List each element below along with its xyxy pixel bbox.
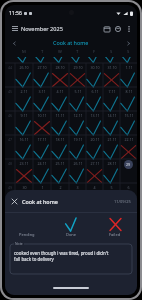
button[interactable]: 7.11 — [103, 87, 120, 111]
button[interactable]: Done — [49, 213, 93, 242]
button[interactable]: 31.10 — [103, 63, 120, 87]
staticText: 49 — [8, 185, 13, 190]
button[interactable]: 4 — [86, 183, 103, 207]
button[interactable]: 30.10 — [86, 63, 103, 87]
staticText: 2 — [59, 185, 62, 190]
button[interactable]: 22.11 — [120, 135, 137, 159]
staticText: 46 — [8, 113, 13, 118]
staticText: 6 — [127, 185, 130, 190]
staticText: 28.10 — [55, 65, 65, 70]
button[interactable]: 14.11 — [103, 111, 120, 135]
button[interactable]: 1.11 — [120, 63, 137, 87]
staticText: 27.11 — [90, 161, 100, 166]
staticText: 12.11 — [73, 113, 83, 118]
button[interactable]: 23.11 — [15, 159, 33, 183]
staticText: 14.11 — [107, 113, 117, 118]
button[interactable]: 17.11 — [33, 135, 51, 159]
staticText: 25.11 — [55, 161, 65, 166]
button[interactable]: Pending — [5, 213, 49, 242]
staticText: 23.11 — [19, 161, 29, 166]
button[interactable]: 25.11 — [51, 159, 69, 183]
staticText: 5 — [110, 185, 113, 190]
staticText: 29.10 — [73, 65, 83, 70]
staticText: 24.11 — [37, 161, 47, 166]
button[interactable]: 28.11 — [103, 159, 120, 183]
staticText: 30.10 — [90, 65, 100, 70]
staticText: 22.11 — [124, 137, 134, 142]
button[interactable]: 28.10 — [51, 63, 69, 87]
button[interactable]: 10.11 — [33, 111, 51, 135]
button[interactable]: 12.11 — [69, 111, 86, 135]
button[interactable]: 24.11 — [33, 159, 51, 183]
staticText: Pending — [19, 232, 35, 237]
staticText: 11:56 — [9, 10, 22, 17]
staticText: Cook at home — [53, 39, 89, 46]
staticText: Failed — [109, 232, 121, 237]
button[interactable]: Menu — [9, 23, 20, 34]
button[interactable]: 6.11 — [86, 87, 103, 111]
staticText: 4.11 — [56, 89, 64, 94]
staticText: 11.11 — [55, 113, 65, 118]
button[interactable]: More options — [123, 23, 134, 34]
staticText: S — [110, 49, 113, 55]
staticText: 48 — [8, 161, 13, 166]
button[interactable]: 30 — [15, 183, 33, 207]
button[interactable]: 8.11 — [120, 87, 137, 111]
button[interactable]: 4.11 — [51, 87, 69, 111]
button[interactable]: 5.11 — [69, 87, 86, 111]
button[interactable]: 18.11 — [51, 135, 69, 159]
button[interactable]: Close — [9, 196, 20, 207]
staticText: W — [58, 49, 62, 55]
staticText: 18.11 — [55, 137, 65, 142]
staticText: 47 — [8, 137, 13, 142]
staticText: Done — [66, 232, 77, 237]
button[interactable]: 21.11 — [103, 135, 120, 159]
button[interactable]: 27.11 — [86, 159, 103, 183]
staticText: 30 — [22, 185, 27, 190]
staticText: M — [22, 49, 26, 55]
button[interactable]: 2 — [51, 183, 69, 207]
button[interactable]: Previous habit — [9, 38, 19, 48]
button[interactable]: 19.11 — [69, 135, 86, 159]
button[interactable]: Statistics — [112, 23, 123, 34]
staticText: 3 — [76, 185, 79, 190]
button[interactable]: Next habit — [123, 38, 133, 48]
staticText: T — [76, 49, 79, 55]
staticText: 9.11 — [20, 113, 28, 118]
button[interactable]: 26.10 — [15, 63, 33, 87]
button[interactable]: 13.11 — [86, 111, 103, 135]
button[interactable]: 3 — [69, 183, 86, 207]
button[interactable]: 9.11 — [15, 111, 33, 135]
button[interactable]: 2.11 — [15, 87, 33, 111]
staticText: T — [41, 49, 44, 55]
button[interactable]: 26.11 — [69, 159, 86, 183]
button[interactable]: 3.11 — [33, 87, 51, 111]
button[interactable]: 1 — [33, 183, 51, 207]
button[interactable]: 11.11 — [51, 111, 69, 135]
staticText: 8.11 — [125, 89, 133, 94]
button[interactable]: 27.10 — [33, 63, 51, 87]
staticText: 19.11 — [73, 137, 83, 142]
staticText: 4 — [93, 185, 96, 190]
staticText: 20.11 — [90, 137, 100, 142]
staticText: Note — [15, 241, 23, 246]
button[interactable]: 5 — [103, 183, 120, 207]
button[interactable]: 20.11 — [86, 135, 103, 159]
staticText: 44 — [8, 65, 13, 70]
staticText: Cook at home — [22, 198, 58, 205]
staticText: 6.11 — [91, 89, 99, 94]
staticText: S — [127, 49, 130, 55]
button[interactable]: Failed — [93, 213, 137, 242]
button[interactable]: 29.10 — [69, 63, 86, 87]
staticText: F — [93, 49, 96, 55]
staticText: 7.11 — [108, 89, 116, 94]
button[interactable]: 6 — [120, 183, 137, 207]
button[interactable]: Calendar view — [101, 23, 112, 34]
button[interactable]: 16.11 — [15, 135, 33, 159]
staticText: 16.11 — [19, 137, 29, 142]
button[interactable]: 15.11 — [120, 111, 137, 135]
staticText: 28.11 — [107, 161, 117, 166]
staticText: 10.11 — [37, 113, 47, 118]
staticText: 1.11 — [125, 65, 133, 70]
button[interactable]: 29 — [120, 159, 137, 183]
